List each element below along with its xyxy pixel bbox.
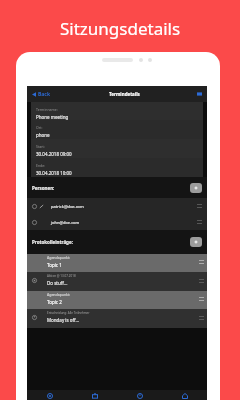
- button[interactable]: Agendapunkt:: [27, 291, 207, 309]
- staticText: Agendapunkt:: [47, 255, 71, 260]
- staticText: Terminname:: [36, 107, 58, 112]
- staticText: Monday is off...: [47, 317, 80, 323]
- button[interactable]: Aktion @ 13.07.2018: [27, 272, 207, 291]
- staticText: Back: [38, 91, 51, 98]
- button[interactable]: Ende:: [31, 158, 203, 177]
- staticText: Ort:: [36, 125, 43, 130]
- button[interactable]: Agendapunkt:: [27, 254, 207, 272]
- button[interactable]: Add: [190, 183, 202, 193]
- staticText: Entscheidung: Alle Teilnehmer: [47, 311, 90, 315]
- staticText: Topic 1: [47, 262, 62, 268]
- button[interactable]: Terminname:: [31, 102, 203, 120]
- staticText: Protokolleinträge:: [32, 239, 73, 245]
- staticText: phone: [36, 132, 50, 138]
- staticText: Sitzungsdetails: [60, 17, 181, 40]
- staticText: Ende:: [36, 163, 46, 168]
- button[interactable]: Export: [162, 390, 207, 400]
- staticText: Termindetails: [109, 91, 140, 97]
- staticText: Start:: [36, 144, 45, 149]
- button[interactable]: Add: [190, 237, 202, 247]
- button[interactable]: Ort:: [31, 120, 203, 139]
- staticText: 30.04.2018 10:00: [36, 170, 72, 176]
- button[interactable]: Back: [27, 87, 56, 102]
- button[interactable]: Start:: [31, 139, 203, 158]
- staticText: Personen:: [32, 185, 55, 191]
- button[interactable]: Options: [192, 87, 207, 101]
- button[interactable]: john@doe.com: [27, 214, 207, 230]
- staticText: Agendapunkt:: [47, 292, 71, 297]
- staticText: Do stuff...: [47, 280, 68, 286]
- button[interactable]: Meetings: [72, 390, 117, 400]
- staticText: Topic 2: [47, 299, 62, 305]
- staticText: patrick@doe.com: [51, 204, 84, 209]
- button[interactable]: Entscheidung: Alle Teilnehmer: [27, 309, 207, 328]
- button[interactable]: Record: [27, 390, 72, 400]
- staticText: Aktion @ 13.07.2018: [47, 274, 76, 278]
- staticText: john@doe.com: [51, 220, 80, 225]
- staticText: Phone meeting: [36, 114, 69, 120]
- button[interactable]: History: [117, 390, 162, 400]
- staticText: 30.04.2018 09:00: [36, 151, 72, 157]
- button[interactable]: patrick@doe.com: [27, 198, 207, 214]
